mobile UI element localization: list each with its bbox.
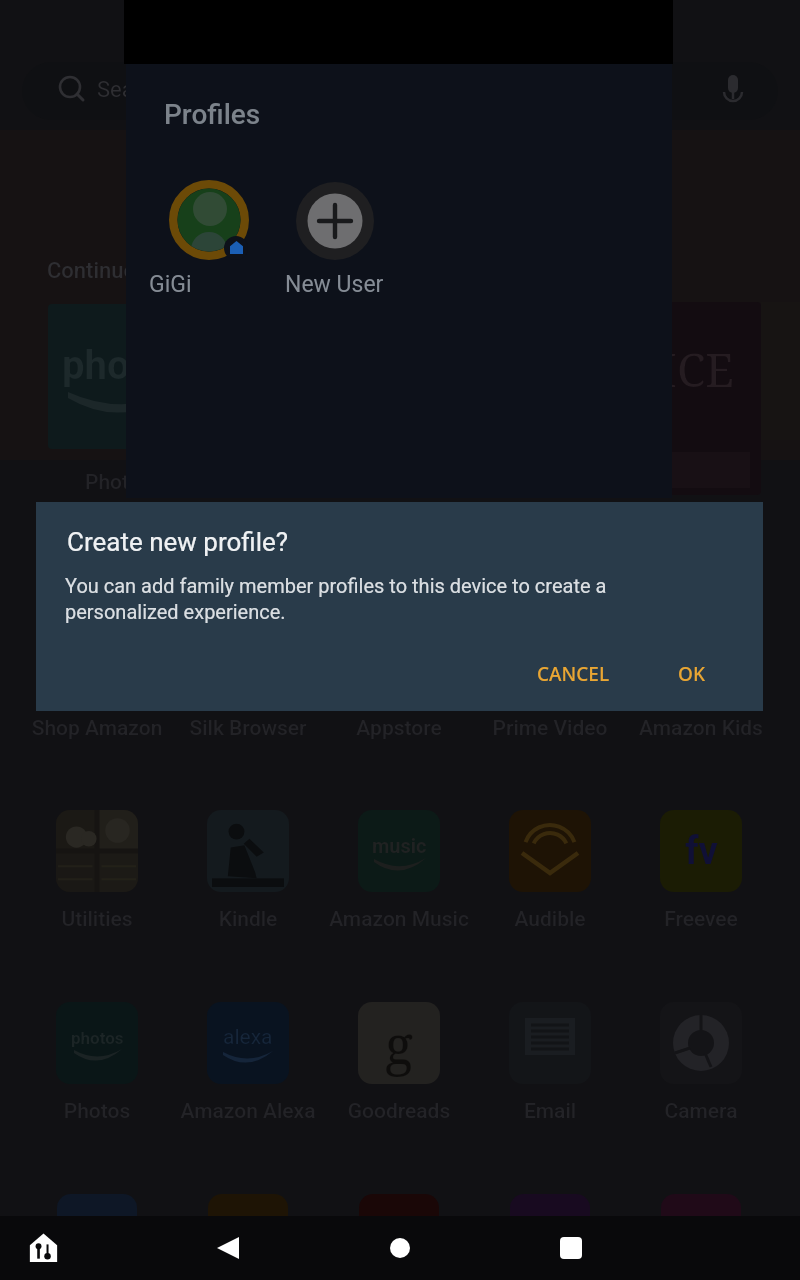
button[interactable]: Featured title (620, 302, 761, 495)
staticText: Continue (47, 258, 136, 284)
button[interactable]: Utilities (56, 810, 138, 892)
staticText: Goodreads (319, 1099, 479, 1124)
staticText: Appstore (319, 716, 479, 741)
button[interactable]: Search (22, 62, 778, 120)
button[interactable]: Back (188, 1216, 268, 1280)
button[interactable]: New User (296, 182, 374, 260)
staticText: Photos (17, 1099, 177, 1124)
button[interactable]: Camera (660, 1002, 742, 1084)
button[interactable]: Home (360, 1216, 440, 1280)
button[interactable]: Kindle (207, 810, 289, 892)
staticText: photos (62, 342, 186, 389)
staticText: GiGi (149, 271, 192, 298)
staticText: Prime Video (470, 716, 630, 741)
button[interactable]: Amazon Alexa (207, 1002, 289, 1084)
staticText: New User (285, 271, 384, 298)
staticText: photos (71, 1028, 124, 1048)
staticText: alexa (223, 1025, 273, 1050)
staticText: Photos (85, 470, 152, 495)
staticText: music (372, 834, 427, 857)
staticText: Email (470, 1099, 630, 1124)
button[interactable]: Goodreads (358, 1002, 440, 1084)
staticText: Kindle (168, 907, 328, 932)
button[interactable]: CANCEL (521, 650, 626, 698)
button[interactable]: Amazon Music (358, 810, 440, 892)
staticText: ICE (660, 338, 734, 401)
staticText: CANCEL (537, 661, 610, 687)
button[interactable]: Email (509, 1002, 591, 1084)
staticText: You can add family member profiles to th… (65, 574, 657, 623)
staticText: Amazon Music (319, 907, 479, 932)
staticText: Shop Amazon (17, 716, 177, 741)
staticText: Audible (470, 907, 630, 932)
button[interactable]: Photos app (48, 304, 200, 449)
button[interactable]: Recent apps (531, 1216, 611, 1280)
staticText: Camera (621, 1099, 781, 1124)
staticText: Silk Browser (168, 716, 328, 741)
staticText: Amazon Kids (621, 716, 781, 741)
staticText: OK (678, 661, 705, 687)
button[interactable]: Audible (509, 810, 591, 892)
button[interactable]: Photos (56, 1002, 138, 1084)
staticText: Freevee (621, 907, 781, 932)
staticText: Profiles (164, 98, 261, 131)
staticText: Utilities (17, 907, 177, 932)
staticText: Amazon Alexa (168, 1099, 328, 1124)
staticText: fv (685, 829, 718, 874)
button[interactable]: Smart home controls (19, 1223, 67, 1271)
button[interactable] (169, 180, 249, 260)
staticText: g (385, 1008, 413, 1079)
staticText: Search (97, 77, 165, 103)
button[interactable]: OK (662, 650, 721, 698)
button[interactable]: Freevee (660, 810, 742, 892)
staticText: Create new profile? (67, 527, 289, 557)
